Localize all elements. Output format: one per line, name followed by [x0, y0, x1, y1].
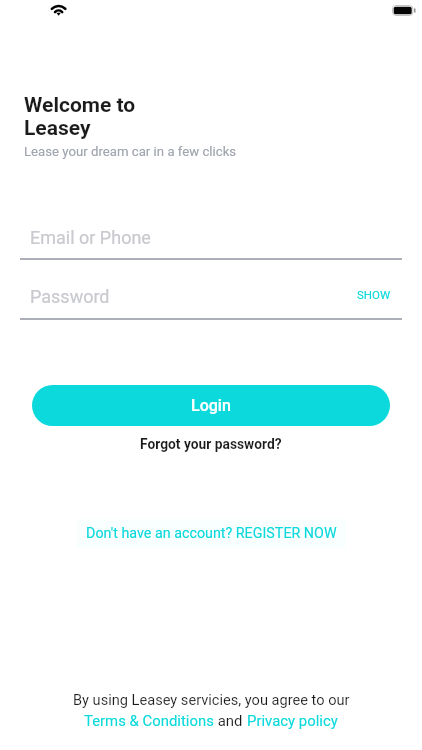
staticText: Don't have an account? REGISTER NOW	[86, 525, 337, 542]
staticText: Terms & Conditions	[84, 712, 214, 729]
button[interactable]: SHOW	[351, 284, 402, 305]
button[interactable]: Forgot your password?	[132, 433, 290, 455]
staticText: Email or Phone	[30, 227, 151, 248]
staticText: Password	[30, 286, 110, 307]
staticText: Lease your dream car in a few clicks	[24, 144, 237, 159]
staticText: and	[214, 712, 247, 729]
button[interactable]: Terms & Conditions	[84, 712, 214, 729]
button[interactable]: Privacy policy	[247, 712, 338, 729]
staticText: Welcome to Leasey	[24, 93, 136, 140]
staticText: Privacy policy	[247, 712, 338, 729]
button[interactable]: Email or Phone	[20, 221, 402, 260]
other: Wi-Fi	[51, 4, 67, 16]
staticText: By using Leasey servicies, you agree to …	[73, 691, 350, 708]
staticText: Forgot your password?	[140, 436, 282, 452]
other: Battery	[392, 5, 416, 16]
staticText: SHOW	[357, 288, 391, 301]
button[interactable]: Password	[20, 280, 402, 320]
button[interactable]: Login	[32, 385, 390, 426]
staticText: Login	[191, 396, 231, 415]
button[interactable]: Don't have an account? REGISTER NOW	[77, 519, 346, 548]
